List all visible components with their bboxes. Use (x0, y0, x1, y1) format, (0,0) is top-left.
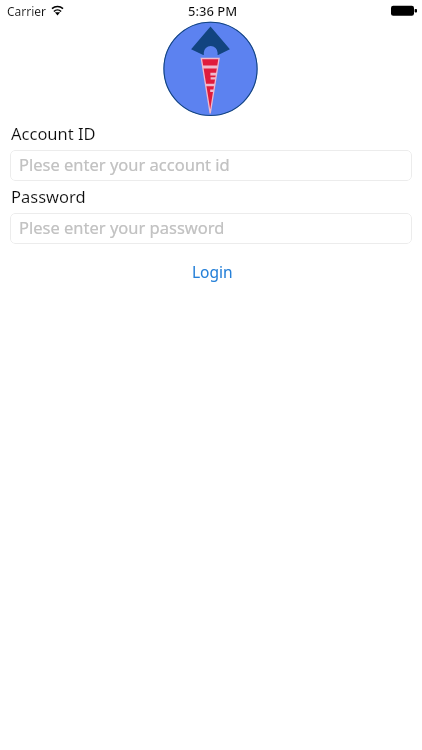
button[interactable]: Plese enter your account id (10, 150, 412, 181)
staticText: 5:36 PM (188, 2, 238, 20)
staticText: Account ID (11, 122, 96, 144)
staticText: Plese enter your password (19, 216, 225, 238)
staticText: Login (192, 261, 233, 282)
staticText: Password (11, 185, 86, 207)
button[interactable]: Plese enter your password (10, 213, 412, 244)
other: Battery full (391, 5, 417, 16)
staticText: Carrier (7, 3, 47, 19)
staticText: Plese enter your account id (19, 153, 230, 175)
other: Wi-Fi signal (51, 5, 64, 15)
button[interactable]: Login (182, 257, 243, 286)
